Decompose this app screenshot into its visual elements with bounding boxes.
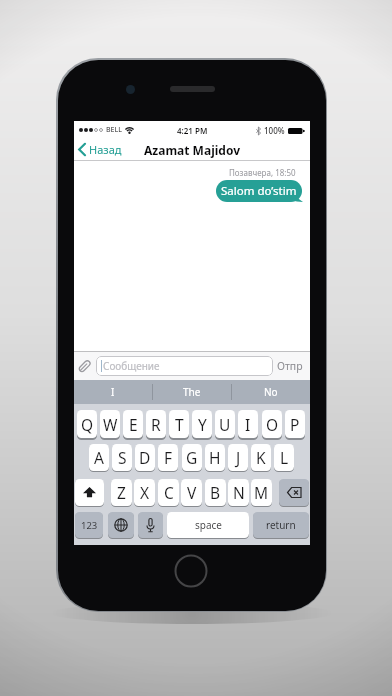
staticText: Azamat Majidov [144, 142, 240, 158]
staticText: V [187, 482, 197, 503]
button[interactable]: return [253, 512, 309, 538]
staticText: I [245, 414, 251, 435]
button[interactable]: J [228, 444, 248, 471]
button[interactable]: F [158, 444, 178, 471]
button[interactable]: G [182, 444, 202, 471]
staticText: BELL [106, 125, 122, 135]
button[interactable]: O [262, 410, 282, 438]
button[interactable]: D [135, 444, 155, 471]
staticText: M [254, 482, 269, 503]
staticText: Z [117, 482, 126, 503]
staticText: 4:21 PM [177, 125, 208, 136]
staticText: R [151, 414, 161, 435]
button[interactable]: R [146, 410, 166, 438]
button[interactable]: C [158, 479, 179, 506]
staticText: I [111, 385, 115, 399]
staticText: Назад [89, 142, 122, 157]
staticText: X [140, 482, 150, 503]
button[interactable]: 123 [75, 512, 103, 538]
staticText: D [139, 447, 151, 468]
button[interactable]: Salom do’stim [216, 180, 302, 202]
button[interactable]: N [228, 479, 249, 506]
staticText: 100% [264, 125, 285, 136]
button[interactable]: No [232, 380, 310, 404]
staticText: H [209, 447, 221, 468]
button[interactable]: P [285, 410, 305, 438]
staticText: N [233, 482, 245, 503]
staticText: U [219, 414, 231, 435]
button[interactable]: X [134, 479, 155, 506]
staticText: A [94, 447, 104, 468]
button[interactable]: U [215, 410, 235, 438]
staticText: Сообщение [103, 359, 160, 373]
staticText: L [280, 447, 289, 468]
button[interactable]: L [274, 444, 294, 471]
button[interactable]: M [251, 479, 272, 506]
staticText: K [256, 447, 266, 468]
staticText: O [266, 414, 279, 435]
button[interactable]: T [169, 410, 189, 438]
button[interactable]: The [153, 380, 231, 404]
staticText: P [290, 414, 300, 435]
button[interactable]: Сообщение [96, 356, 273, 376]
button[interactable]: I [74, 380, 152, 404]
staticText: C [164, 482, 174, 503]
staticText: E [129, 414, 138, 435]
staticText: No [264, 385, 278, 399]
button[interactable]: I [238, 410, 258, 438]
button[interactable]: Назад [78, 142, 122, 157]
staticText: T [175, 414, 184, 435]
staticText: J [236, 447, 241, 468]
staticText: S [118, 447, 127, 468]
staticText: Q [81, 414, 94, 435]
button[interactable]: W [100, 410, 120, 438]
staticText: W [103, 414, 118, 435]
staticText: F [164, 447, 173, 468]
button[interactable]: Q [77, 410, 97, 438]
button[interactable]: K [251, 444, 271, 471]
button[interactable] [75, 479, 104, 506]
button[interactable]: space [167, 512, 249, 538]
staticText: Y [198, 414, 207, 435]
staticText: Salom do’stim [221, 183, 297, 199]
staticText: B [210, 482, 221, 503]
button[interactable]: E [123, 410, 143, 438]
button[interactable]: Отпр [277, 359, 303, 373]
button[interactable]: A [89, 444, 109, 471]
staticText: Позавчера, 18:50 [229, 167, 296, 178]
button[interactable]: Z [111, 479, 132, 506]
button[interactable]: B [205, 479, 226, 506]
button[interactable]: V [181, 479, 202, 506]
staticText: 123 [81, 519, 98, 532]
button[interactable] [138, 512, 163, 538]
staticText: The [183, 385, 201, 399]
button[interactable] [279, 479, 309, 506]
staticText: return [266, 518, 296, 532]
staticText: space [195, 518, 222, 532]
button[interactable] [108, 512, 134, 538]
button[interactable]: Y [192, 410, 212, 438]
button[interactable]: H [205, 444, 225, 471]
button[interactable]: S [112, 444, 132, 471]
staticText: G [186, 447, 198, 468]
